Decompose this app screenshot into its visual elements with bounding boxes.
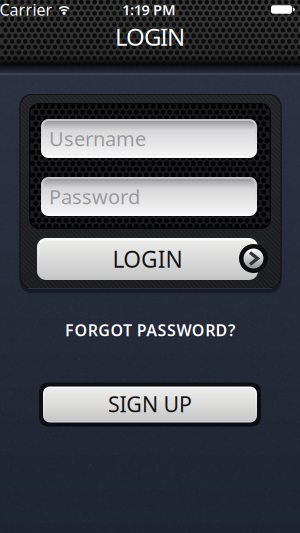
staticText: Username — [49, 125, 146, 152]
staticText: FORGOT PASSWORD? — [65, 319, 235, 341]
staticText: Password — [49, 183, 140, 210]
staticText: LOGIN — [115, 21, 185, 52]
button[interactable]: Username — [41, 119, 257, 158]
staticText: 1:19 PM — [122, 0, 176, 19]
staticText: Carrier — [0, 0, 52, 20]
staticText: SIGN UP — [108, 390, 192, 418]
button[interactable]: SIGN UP — [39, 382, 261, 426]
button[interactable]: Password — [41, 177, 257, 216]
staticText: LOGIN — [113, 244, 182, 274]
button[interactable]: LOGIN — [37, 238, 271, 280]
button[interactable]: FORGOT PASSWORD? — [65, 319, 235, 341]
